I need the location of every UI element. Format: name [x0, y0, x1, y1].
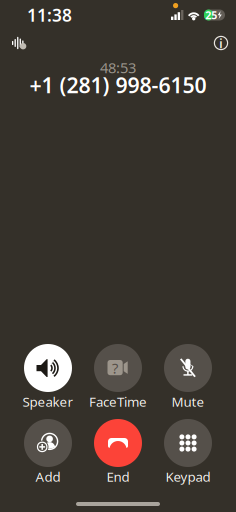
staticText: Speaker	[22, 393, 73, 410]
staticText: ?	[112, 358, 118, 378]
button[interactable]: Keypad	[153, 419, 223, 486]
staticText: 48:53	[100, 58, 136, 77]
button[interactable]: Speaker	[13, 344, 83, 411]
button[interactable]: End	[83, 419, 153, 486]
staticText: Keypad	[165, 468, 210, 485]
staticText: 25	[205, 8, 217, 22]
staticText: FaceTime	[89, 393, 147, 410]
staticText: Add	[35, 468, 60, 485]
button[interactable]: Mute	[153, 344, 223, 411]
staticText: i	[219, 34, 223, 52]
staticText: 11:38	[27, 3, 72, 26]
button[interactable]: ?	[83, 344, 153, 411]
button[interactable]: Add	[13, 419, 83, 486]
staticText: Mute	[171, 393, 204, 410]
staticText: End	[106, 468, 129, 485]
button[interactable]: Live voicemail	[6, 30, 32, 56]
button[interactable]: Call details	[208, 30, 234, 56]
staticText: +1 (281) 998-6150	[29, 71, 206, 99]
